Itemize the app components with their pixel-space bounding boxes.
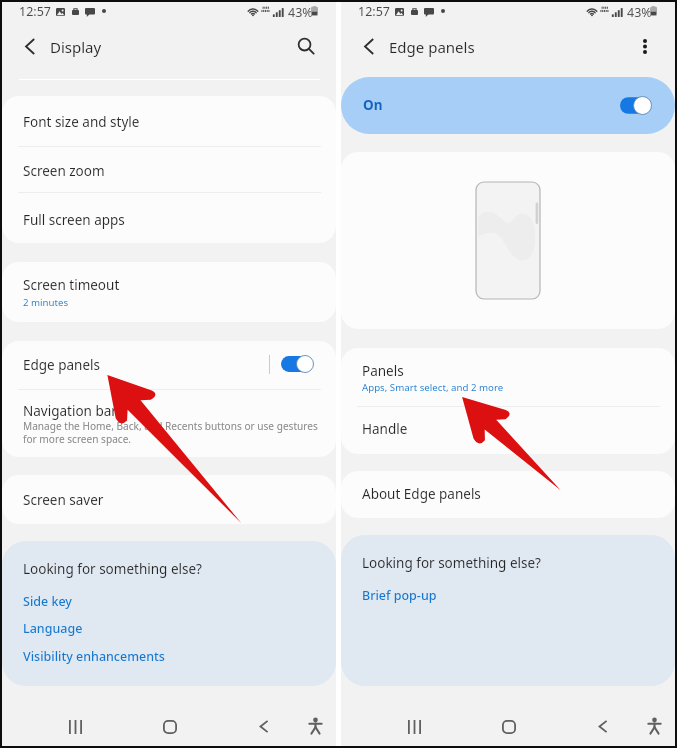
button[interactable]: Toggle on [620,96,652,115]
staticText: Display [50,37,102,57]
button[interactable]: Recent apps [400,712,429,741]
button[interactable]: Font size and style [2,96,336,145]
staticText: Handle [362,420,408,438]
staticText: 43% [627,4,652,21]
staticText: 12:57 [358,3,390,20]
staticText: Brief pop-up [362,587,437,604]
button[interactable]: Navigate up [17,33,43,59]
staticText: Full screen apps [23,211,125,229]
button[interactable]: Accessibility [301,711,330,740]
staticText: Screen timeout [23,276,120,294]
button[interactable]: Back [588,712,617,741]
button[interactable]: Screen saver [2,475,336,524]
button[interactable]: Edge panels on [341,77,675,134]
button[interactable]: More options [632,33,658,59]
staticText: Manage the Home, Back, and Recents butto… [23,419,318,446]
staticText: Edge panels [23,356,101,374]
button[interactable]: Navigation bar [2,389,336,457]
staticText: Panels [362,362,404,380]
staticText: 43% [288,4,313,21]
button[interactable]: Toggle on [281,355,314,373]
staticText: Looking for something else? [362,554,541,572]
button[interactable]: Language [23,617,83,640]
staticText: Side key [23,593,72,610]
button[interactable]: Navigate up [356,33,382,59]
button[interactable]: Search [293,33,319,59]
button[interactable]: Back [249,712,278,741]
button[interactable]: Screen zoom [2,145,336,194]
button[interactable]: Full screen apps [2,194,336,243]
button[interactable]: Visibility enhancements [23,645,165,668]
button[interactable]: About Edge panels [341,471,675,518]
staticText: Font size and style [23,113,140,131]
button[interactable]: Screen timeout [2,262,336,322]
staticText: About Edge panels [362,485,481,503]
staticText: 2 minutes [23,296,69,309]
button[interactable]: Brief pop-up [362,584,437,607]
button[interactable]: Edge panels [2,341,336,389]
button[interactable]: Recent apps [61,712,90,741]
staticText: Apps, Smart select, and 2 more [362,381,504,394]
staticText: Edge panels [389,37,475,57]
staticText: Language [23,620,83,637]
staticText: Screen zoom [23,162,105,180]
button[interactable]: Home [494,712,523,741]
staticText: Screen saver [23,491,104,509]
button[interactable]: Handle [341,406,675,454]
staticText: Visibility enhancements [23,648,165,665]
staticText: Looking for something else? [23,560,202,578]
button[interactable]: Home [155,712,184,741]
button[interactable]: Accessibility [640,711,669,740]
button[interactable]: Panels [341,348,675,406]
staticText: Navigation bar [23,402,117,420]
button[interactable]: Side key [23,590,72,613]
staticText: 12:57 [19,3,51,20]
staticText: On [363,96,383,114]
